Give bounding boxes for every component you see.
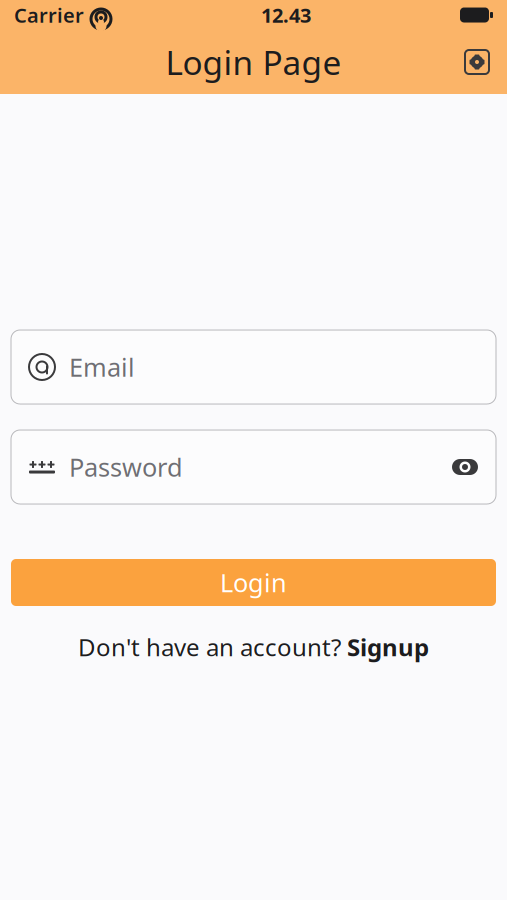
staticText: Signup — [347, 631, 429, 663]
staticText: 12.43 — [261, 2, 311, 28]
button[interactable]: Settings — [455, 40, 499, 84]
staticText: Carrier — [14, 2, 84, 28]
staticText: Email — [69, 350, 135, 384]
staticText: Don't have an account? — [78, 631, 347, 663]
button[interactable]: Don't have an account? — [11, 632, 496, 662]
staticText: Password — [69, 450, 183, 484]
staticText: Login Page — [165, 40, 341, 84]
staticText: Login — [220, 566, 287, 599]
button[interactable]: Password — [11, 430, 496, 504]
button[interactable]: Email — [11, 330, 496, 404]
button[interactable]: Login — [11, 559, 496, 606]
